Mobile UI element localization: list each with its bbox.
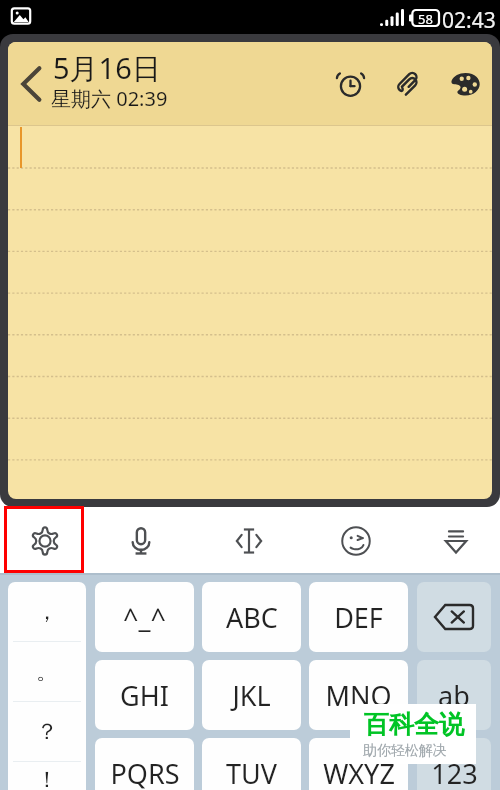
staticText: ^_^ bbox=[123, 599, 166, 636]
staticText: WXYZ bbox=[323, 755, 395, 790]
staticText: 助你轻松解决 bbox=[363, 742, 447, 760]
button[interactable]: 123 bbox=[417, 738, 491, 790]
staticText: DEF bbox=[334, 599, 383, 636]
button[interactable]: GHI bbox=[95, 660, 194, 730]
staticText: TUV bbox=[226, 755, 277, 790]
staticText: 星期六 02:39 bbox=[51, 85, 168, 112]
staticText: ！ bbox=[36, 766, 58, 790]
button[interactable]: ab bbox=[417, 660, 491, 730]
button[interactable]: Attachment bbox=[385, 42, 431, 125]
staticText: 02:43 bbox=[442, 6, 496, 35]
button[interactable]: Keyboard settings bbox=[5, 507, 85, 574]
button[interactable]: Voice input bbox=[101, 507, 181, 574]
button[interactable]: MNO bbox=[309, 660, 408, 730]
staticText: MNO bbox=[325, 677, 392, 714]
button[interactable]: DEF bbox=[309, 582, 408, 652]
button[interactable]: TUV bbox=[202, 738, 301, 790]
button[interactable]: Hide keyboard bbox=[416, 507, 496, 574]
staticText: ABC bbox=[226, 599, 278, 636]
staticText: ？ bbox=[36, 718, 58, 746]
staticText: JKL bbox=[232, 677, 271, 714]
button[interactable]: Emoji bbox=[316, 507, 396, 574]
staticText: 5月16日 bbox=[53, 48, 161, 88]
button[interactable]: PQRS bbox=[95, 738, 194, 790]
button[interactable] bbox=[8, 126, 492, 499]
staticText: ab bbox=[438, 677, 470, 714]
button[interactable]: Reminder bbox=[327, 42, 373, 125]
staticText: 百科全说 bbox=[364, 709, 464, 740]
staticText: 123 bbox=[431, 755, 478, 790]
button[interactable]: WXYZ bbox=[309, 738, 408, 790]
button[interactable]: Move cursor bbox=[209, 507, 289, 574]
staticText: 。 bbox=[36, 658, 58, 686]
staticText: ， bbox=[36, 598, 58, 626]
staticText: GHI bbox=[120, 677, 169, 714]
button[interactable]: Backspace bbox=[417, 582, 491, 652]
button[interactable]: ^_^ bbox=[95, 582, 194, 652]
button[interactable]: JKL bbox=[202, 660, 301, 730]
button[interactable]: ABC bbox=[202, 582, 301, 652]
staticText: PQRS bbox=[110, 755, 180, 790]
staticText: 58 bbox=[418, 10, 433, 28]
button[interactable]: Back bbox=[8, 42, 54, 125]
button[interactable]: ， bbox=[8, 582, 86, 790]
button[interactable]: Theme colour bbox=[442, 42, 488, 125]
